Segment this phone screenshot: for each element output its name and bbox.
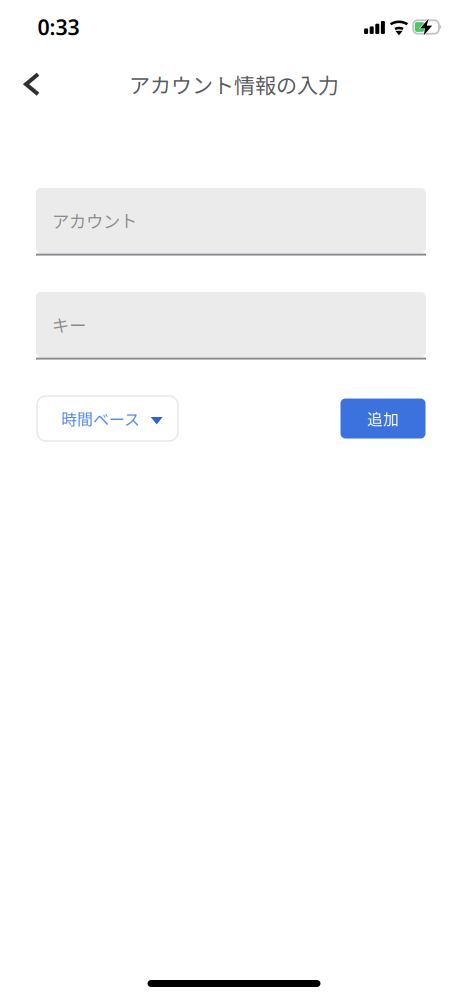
- staticText: 追加: [367, 407, 399, 430]
- staticText: 時間ベース: [61, 407, 140, 430]
- button[interactable]: 追加: [340, 398, 425, 438]
- button[interactable]: 時間ベース: [37, 396, 178, 441]
- staticText: アカウント情報の入力: [129, 69, 339, 99]
- staticText: キー: [52, 312, 86, 337]
- staticText: 0:33: [37, 13, 79, 41]
- staticText: アカウント: [52, 208, 137, 233]
- button[interactable]: Back: [4, 59, 60, 109]
